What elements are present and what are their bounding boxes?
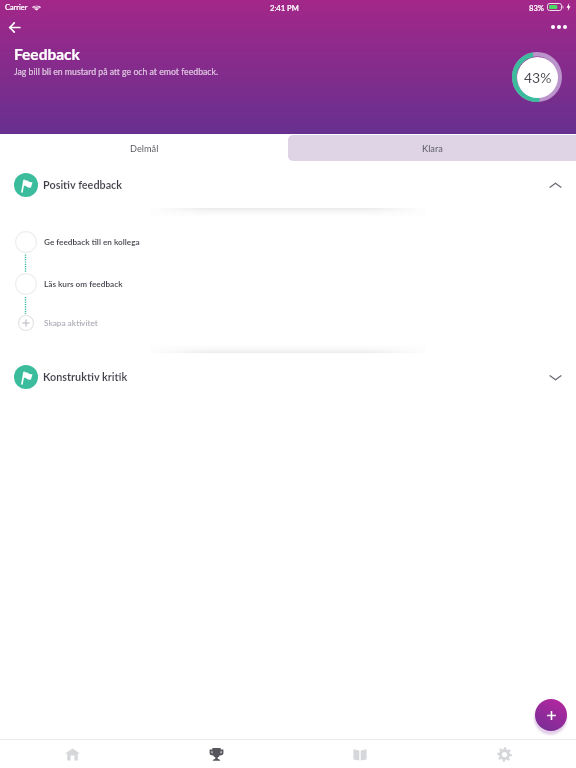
staticText: Delmål — [130, 143, 159, 154]
staticText: Positiv feedback — [43, 178, 123, 191]
staticText: Feedback — [14, 45, 80, 64]
button[interactable]: Settings — [432, 740, 576, 768]
button[interactable]: Konstruktiv kritik — [0, 353, 576, 400]
staticText: 83% — [529, 3, 544, 12]
button[interactable]: Läs kurs om feedback — [0, 268, 576, 300]
button[interactable]: Home — [0, 740, 144, 768]
button[interactable]: Positiv feedback — [0, 161, 576, 208]
staticText: Ge feedback till en kollega — [44, 237, 140, 247]
staticText: Skapa aktivitet — [44, 318, 98, 328]
staticText: Konstruktiv kritik — [43, 370, 128, 383]
button[interactable]: More options — [545, 13, 573, 41]
staticText: Klara — [422, 143, 443, 154]
button[interactable]: Klara — [288, 135, 576, 161]
button[interactable]: Delmål — [0, 135, 288, 161]
staticText: 43% — [524, 69, 552, 86]
staticText: Läs kurs om feedback — [44, 279, 123, 289]
button[interactable]: Ge feedback till en kollega — [0, 226, 576, 258]
staticText: Jag bill bli en mustard på att ge och at… — [14, 66, 219, 76]
button[interactable]: Achievements — [144, 740, 288, 768]
button[interactable]: Library — [288, 740, 432, 768]
staticText: Carrier — [5, 3, 28, 12]
button[interactable]: Skapa aktivitet — [0, 309, 576, 337]
button[interactable]: Add — [535, 699, 567, 731]
button[interactable]: Back — [0, 13, 28, 41]
staticText: 2:41 PM — [270, 3, 299, 12]
